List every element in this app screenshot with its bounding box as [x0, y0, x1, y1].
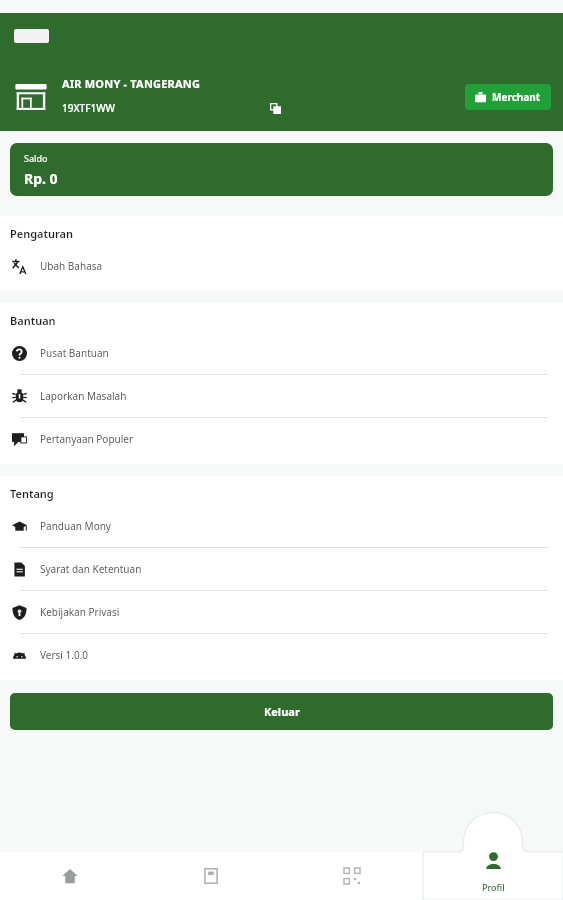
- button[interactable]: Kebijakan Privasi: [0, 591, 563, 633]
- button[interactable]: Ubah Bahasa: [0, 245, 563, 287]
- staticText: Pertanyaan Populer: [40, 432, 134, 446]
- staticText: Keluar: [264, 704, 300, 719]
- staticText: Bantuan: [10, 313, 56, 328]
- button[interactable]: Badge: [14, 29, 49, 43]
- staticText: Laporkan Masalah: [40, 389, 127, 403]
- button[interactable]: Panduan Mony: [0, 505, 563, 547]
- staticText: Kebijakan Privasi: [40, 605, 120, 619]
- button[interactable]: Pusat Bantuan: [0, 332, 563, 374]
- button[interactable]: Pertanyaan Populer: [0, 418, 563, 460]
- staticText: Saldo: [24, 152, 48, 164]
- staticText: Rp. 0: [24, 169, 58, 188]
- button[interactable]: Scan QR: [281, 852, 422, 900]
- button[interactable]: Syarat dan Ketentuan: [0, 548, 563, 590]
- button[interactable]: Copy code: [266, 99, 284, 117]
- button[interactable]: Versi 1.0.0: [0, 634, 563, 676]
- button[interactable]: Home: [0, 852, 140, 900]
- staticText: 19XTF1WW: [62, 101, 115, 115]
- button[interactable]: Saldo: [10, 143, 553, 196]
- staticText: Versi 1.0.0: [40, 648, 89, 662]
- staticText: AIR MONY - TANGERANG: [62, 76, 201, 91]
- button[interactable]: Transactions: [140, 852, 281, 900]
- staticText: Merchant: [492, 90, 541, 104]
- staticText: Tentang: [10, 486, 54, 501]
- button[interactable]: Laporkan Masalah: [0, 375, 563, 417]
- staticText: Profil: [482, 881, 505, 893]
- button[interactable]: Profil: [423, 838, 563, 900]
- button[interactable]: Merchant: [465, 84, 551, 110]
- button[interactable]: Keluar: [10, 693, 553, 730]
- staticText: Syarat dan Ketentuan: [40, 562, 142, 576]
- staticText: Pengaturan: [10, 226, 74, 241]
- staticText: Pusat Bantuan: [40, 346, 109, 360]
- staticText: Panduan Mony: [40, 519, 111, 533]
- staticText: Ubah Bahasa: [40, 259, 103, 273]
